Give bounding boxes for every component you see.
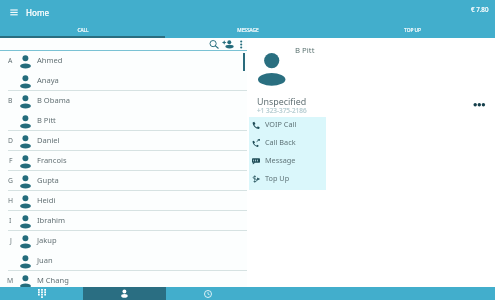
staticText: Top Up [265,173,290,183]
button[interactable]: Add contact [221,38,235,51]
staticText: J [10,236,12,245]
staticText: Unspecified [257,95,307,107]
staticText: I [9,216,12,225]
staticText: Call Back [265,137,296,147]
button[interactable]: CALL [0,24,165,38]
button[interactable]: Dialpad [0,287,83,300]
button[interactable]: G [0,171,247,191]
staticText: MESSAGE [237,27,259,34]
button[interactable]: Message [249,153,326,171]
staticText: Daniel [37,135,60,145]
staticText: Ibrahim [37,215,66,225]
button[interactable]: B Pitt [0,111,247,131]
staticText: B Pitt [37,115,56,125]
staticText: B [8,96,13,105]
button[interactable]: VOIP Call [249,117,326,135]
staticText: M Chang [37,275,69,285]
button[interactable]: M [0,271,247,291]
staticText: H [8,196,14,205]
staticText: Gupta [37,175,59,185]
staticText: M [7,276,14,285]
staticText: Anaya [37,75,59,85]
button[interactable]: Contacts [83,287,166,300]
button[interactable]: A [0,51,247,71]
staticText: F [9,156,13,165]
button[interactable]: Search [207,38,221,51]
button[interactable]: Juan [0,251,247,271]
button[interactable]: I [0,211,247,231]
button[interactable]: Top Up [249,171,326,189]
staticText: A [8,56,13,65]
button[interactable]: Menu [5,3,23,21]
staticText: Message [265,155,296,165]
staticText: CALL [77,27,89,34]
button[interactable]: H [0,191,247,211]
staticText: +1 323-375-2186 [257,106,307,115]
staticText: TOP UP [404,27,421,34]
staticText: VOIP Call [265,119,297,129]
button[interactable]: More options [236,38,247,51]
button[interactable]: B [0,91,247,111]
staticText: G [8,176,13,185]
button[interactable]: J [0,231,247,251]
button[interactable]: More options [474,97,490,111]
staticText: Jakup [37,235,57,245]
staticText: € 7.80 [471,5,489,13]
staticText: B Obama [37,95,70,105]
button[interactable]: Anaya [0,71,247,91]
button[interactable]: MESSAGE [165,24,330,38]
button[interactable]: D [0,131,247,151]
button[interactable]: TOP UP [330,24,495,38]
staticText: Francois [37,155,67,165]
staticText: Juan [37,255,53,265]
staticText: Heidi [37,195,56,205]
staticText: Ahmed [37,55,63,65]
button[interactable]: Call Back [249,135,326,153]
staticText: D [8,136,13,145]
staticText: B Pitt [295,45,315,56]
button[interactable]: F [0,151,247,171]
button[interactable]: Recent calls [166,287,249,300]
staticText: Home [26,7,50,18]
